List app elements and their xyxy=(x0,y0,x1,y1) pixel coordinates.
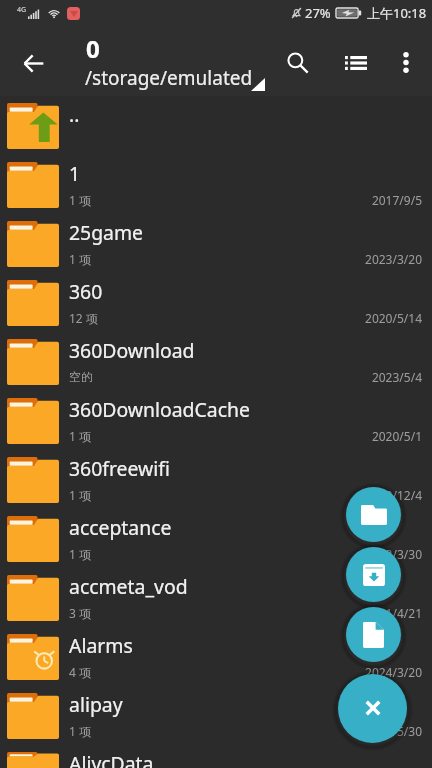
staticText: 1 项 xyxy=(69,546,91,562)
staticText: 1 项 xyxy=(69,428,91,444)
staticText: 1 项 xyxy=(69,192,91,208)
staticText: 2017/9/5 xyxy=(371,192,422,208)
staticText: 1 项 xyxy=(69,487,91,503)
staticText: 360Download xyxy=(69,337,195,363)
staticText: 2024/3/20 xyxy=(365,664,422,680)
button[interactable]: 360 xyxy=(0,273,432,332)
button[interactable]: New folder xyxy=(346,487,401,542)
button[interactable]: Back xyxy=(9,39,57,87)
staticText: 4G xyxy=(17,5,27,15)
staticText: Alarms xyxy=(69,632,133,658)
button[interactable]: Extract archive xyxy=(346,547,401,602)
button[interactable]: 360DownloadCache xyxy=(0,391,432,450)
staticText: alipay xyxy=(69,691,123,717)
staticText: 2023/12/4 xyxy=(365,487,422,503)
button[interactable]: alipay xyxy=(0,686,432,745)
button[interactable]: Alarms xyxy=(0,627,432,686)
staticText: 360 xyxy=(69,278,103,304)
staticText: /storage/emulated xyxy=(85,65,253,91)
button[interactable]: AlivcData xyxy=(0,745,432,768)
button[interactable]: 360Download xyxy=(0,332,432,391)
button[interactable]: 1 xyxy=(0,155,432,214)
button[interactable]: Change view xyxy=(332,38,379,85)
staticText: 360freewifi xyxy=(69,455,170,481)
button[interactable]: New file xyxy=(346,607,401,662)
button[interactable]: 25game xyxy=(0,214,432,273)
staticText: 空的 xyxy=(69,369,93,384)
button[interactable]: .. xyxy=(0,96,432,155)
staticText: 1 项 xyxy=(69,251,91,267)
staticText: 2020/5/14 xyxy=(365,310,422,326)
staticText: .. xyxy=(69,101,80,127)
staticText: 上午10:18 xyxy=(367,4,427,22)
button[interactable]: 360freewifi xyxy=(0,450,432,509)
staticText: accmeta_vod xyxy=(69,573,188,599)
staticText: 2023/5/4 xyxy=(371,369,422,385)
staticText: 3 项 xyxy=(69,605,91,621)
staticText: 2023/5/30 xyxy=(365,723,422,739)
button[interactable]: Close menu xyxy=(338,674,407,743)
button[interactable]: accmeta_vod xyxy=(0,568,432,627)
staticText: 0 xyxy=(86,32,100,65)
staticText: 27% xyxy=(305,4,331,22)
staticText: 2021/4/21 xyxy=(365,605,422,621)
staticText: 2020/5/1 xyxy=(371,428,422,444)
staticText: 12 项 xyxy=(69,310,98,326)
staticText: 4 项 xyxy=(69,664,91,680)
staticText: 1 xyxy=(69,160,81,186)
staticText: 360DownloadCache xyxy=(69,396,250,422)
staticText: acceptance xyxy=(69,514,172,540)
staticText: 2023/3/30 xyxy=(365,546,422,562)
button[interactable]: acceptance xyxy=(0,509,432,568)
staticText: 2023/3/20 xyxy=(365,251,422,267)
staticText: 1 项 xyxy=(69,723,91,739)
staticText: 25game xyxy=(69,219,144,245)
staticText: AlivcData xyxy=(69,750,154,768)
button[interactable]: Search xyxy=(274,38,321,85)
button[interactable]: More options xyxy=(384,38,428,82)
